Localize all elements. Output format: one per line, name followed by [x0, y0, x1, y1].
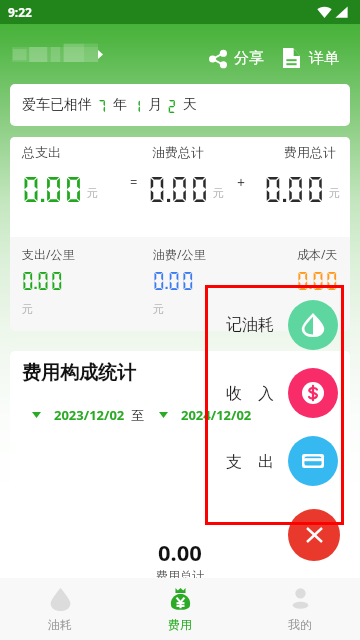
staticText: 支出/公里 — [22, 246, 75, 262]
staticText: 0.00 — [296, 269, 339, 291]
staticText: 我的 — [288, 617, 312, 632]
staticText: 成本/天 — [297, 246, 338, 262]
staticText: 支 出 — [226, 450, 274, 472]
button[interactable]: 2024/12/02 — [144, 402, 256, 428]
staticText: 0.00 — [21, 173, 84, 205]
staticText: 爱车已相伴 — [22, 96, 92, 114]
staticText: 天 — [183, 96, 197, 114]
button[interactable]: 费用 — [120, 578, 240, 640]
staticText: 费用总计 — [156, 568, 204, 578]
staticText: = — [130, 173, 138, 191]
staticText: 元 — [329, 186, 340, 200]
button[interactable]: Close menu — [288, 509, 340, 561]
button[interactable]: 爱车已相伴 — [10, 84, 350, 126]
staticText: + — [237, 173, 246, 192]
staticText: 费用构成统计 — [22, 361, 136, 385]
staticText: 月 — [148, 96, 162, 114]
staticText: 0.00 — [158, 537, 202, 567]
staticText: 9:22 — [8, 4, 32, 20]
button[interactable]: 记油耗 — [212, 300, 338, 350]
button[interactable]: 我的 — [240, 578, 360, 640]
staticText: 油耗 — [48, 617, 72, 632]
staticText: 年 — [113, 96, 127, 114]
staticText: 元 — [22, 302, 33, 316]
staticText: 总支出 — [22, 144, 61, 160]
button[interactable]: 油耗 — [0, 578, 120, 640]
staticText: 0.00 — [152, 269, 195, 291]
button[interactable]: 分享 — [205, 46, 268, 71]
staticText: 元 — [153, 302, 164, 316]
button[interactable]: 支 出 — [212, 436, 338, 486]
staticText: 油费/公里 — [153, 246, 206, 262]
staticText: 7 — [97, 98, 107, 113]
staticText: 详单 — [309, 49, 339, 68]
staticText: 0.00 — [263, 173, 326, 205]
staticText: 0.00 — [147, 173, 210, 205]
staticText: 油费总计 — [152, 144, 204, 160]
staticText: 至 — [131, 407, 144, 423]
staticText: 分享 — [234, 49, 264, 68]
staticText: 收 入 — [226, 382, 274, 404]
button[interactable]: 2023/12/02 — [10, 402, 129, 428]
button[interactable]: 收 入 — [212, 368, 338, 418]
staticText: 元 — [213, 186, 224, 200]
staticText: 0.00 — [21, 269, 64, 291]
staticText: 费用 — [168, 617, 192, 632]
staticText: 1 — [132, 98, 142, 113]
staticText: 2023/12/02 — [54, 406, 125, 424]
staticText: 2 — [167, 98, 177, 113]
staticText: 2024/12/02 — [181, 406, 252, 424]
button[interactable]: 详单 — [279, 45, 343, 71]
staticText: 费用总计 — [284, 144, 336, 160]
staticText: 元 — [87, 186, 98, 200]
staticText: 记油耗 — [226, 315, 274, 335]
